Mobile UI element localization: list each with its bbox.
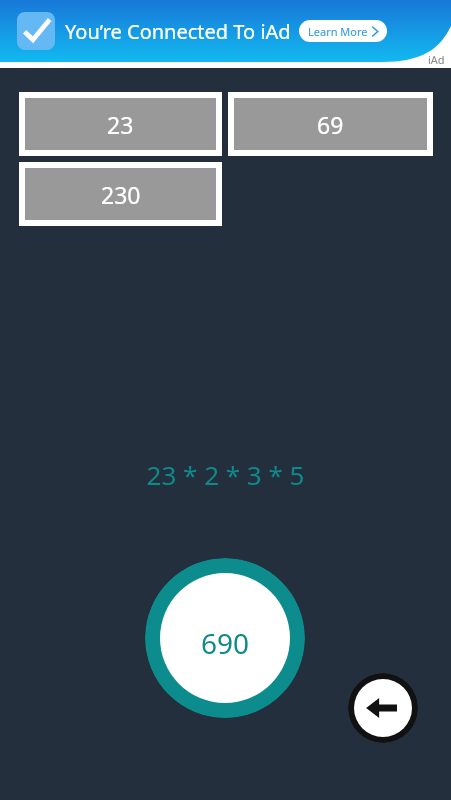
staticText: Learn More bbox=[308, 24, 368, 39]
staticText: 69 bbox=[317, 109, 344, 140]
staticText: You’re Connected To iAd bbox=[65, 18, 291, 45]
staticText: iAd bbox=[428, 52, 445, 67]
staticText: 690 bbox=[201, 624, 250, 662]
button[interactable]: 230 bbox=[19, 162, 222, 226]
staticText: 23 * 2 * 3 * 5 bbox=[0, 457, 451, 492]
button[interactable]: 23 bbox=[19, 92, 222, 156]
staticText: 230 bbox=[101, 179, 141, 210]
button[interactable]: 690 bbox=[145, 558, 305, 718]
button[interactable]: Learn More bbox=[299, 20, 387, 42]
staticText: 23 bbox=[107, 109, 134, 140]
button[interactable]: Back bbox=[348, 673, 418, 743]
button[interactable] bbox=[0, 0, 451, 62]
button[interactable]: 69 bbox=[228, 92, 433, 156]
